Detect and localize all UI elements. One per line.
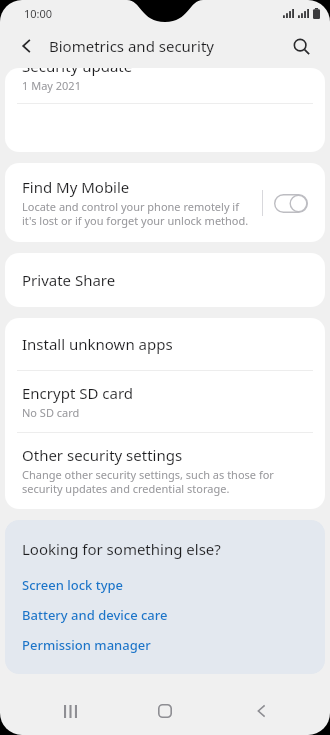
staticText: Find My Mobile <box>22 177 130 197</box>
button[interactable]: Encrypt SD card <box>5 371 325 432</box>
button[interactable]: Security update <box>5 68 325 103</box>
staticText: 1 May 2021 <box>22 78 81 93</box>
staticText: Other security settings <box>22 445 183 465</box>
staticText: Install unknown apps <box>22 334 173 354</box>
staticText: Private Share <box>22 270 116 290</box>
button[interactable]: Other security settings <box>5 433 325 509</box>
button[interactable]: Install unknown apps <box>5 318 325 370</box>
staticText: Change other security settings, such as … <box>22 467 311 496</box>
button[interactable]: Home <box>139 687 191 735</box>
button[interactable]: Permission manager <box>22 630 311 660</box>
button[interactable]: Private Share <box>5 253 325 307</box>
staticText: Security update <box>22 68 133 76</box>
staticText: Looking for something else? <box>22 539 221 559</box>
staticText: Screen lock type <box>22 576 124 594</box>
button[interactable]: Recents <box>44 687 96 735</box>
button[interactable]: Find My Mobile <box>5 163 325 242</box>
staticText: Locate and control your phone remotely i… <box>22 199 254 228</box>
staticText: Permission manager <box>22 636 151 654</box>
button[interactable]: Battery and device care <box>22 600 311 630</box>
staticText: No SD card <box>22 405 80 420</box>
button[interactable]: Back <box>235 687 287 735</box>
button[interactable]: Back <box>10 29 44 63</box>
button[interactable]: Find My Mobile toggle, off <box>274 194 308 213</box>
button[interactable]: Search <box>284 29 318 63</box>
staticText: 10:00 <box>24 6 53 21</box>
staticText: Biometrics and security <box>49 36 284 56</box>
staticText: Battery and device care <box>22 606 168 624</box>
staticText: Encrypt SD card <box>22 383 134 403</box>
button[interactable]: Screen lock type <box>22 570 311 600</box>
